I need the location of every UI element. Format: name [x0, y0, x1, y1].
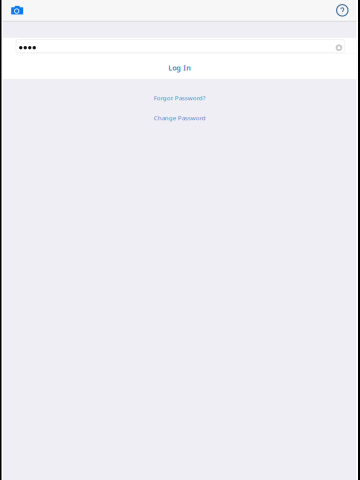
- button[interactable]: Camera: [3, 0, 31, 22]
- staticText: Change Password: [154, 114, 206, 122]
- staticText: Log In: [168, 63, 191, 73]
- button[interactable]: Log In: [3, 53, 356, 79]
- button[interactable]: Change Password: [148, 113, 212, 123]
- button[interactable]: Password: [3, 38, 356, 53]
- button[interactable]: Help: [336, 0, 356, 22]
- staticText: Forgot Password?: [154, 94, 206, 102]
- button[interactable]: Forgot Password?: [148, 93, 212, 103]
